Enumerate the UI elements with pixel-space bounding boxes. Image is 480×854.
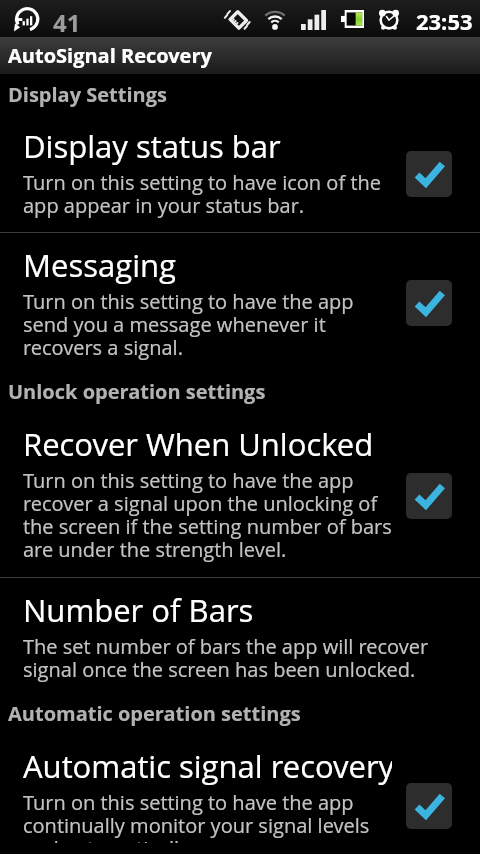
staticText: AutoSignal Recovery [8, 42, 212, 69]
staticText: Turn on this setting to have the app con… [23, 789, 392, 843]
staticText: Display Settings [8, 81, 480, 108]
button[interactable]: Toggle setting [406, 280, 452, 326]
staticText: Turn on this setting to have the app rec… [23, 467, 392, 563]
staticText: Display status bar [23, 125, 281, 167]
button[interactable]: Number of Bars [0, 578, 480, 688]
staticText: 23:53 [416, 6, 473, 36]
staticText: Turn on this setting to have the app sen… [23, 288, 392, 361]
button[interactable]: Display status bar [0, 125, 480, 232]
staticText: Number of Bars [23, 589, 254, 631]
staticText: 41 [53, 6, 81, 39]
staticText: Recover When Unlocked [23, 423, 374, 465]
staticText: The set number of bars the app will reco… [23, 633, 456, 683]
staticText: Messaging [23, 244, 177, 286]
staticText: Turn on this setting to have icon of the… [23, 169, 392, 219]
button[interactable]: Automatic signal recovery [0, 745, 480, 854]
button[interactable]: Toggle setting [406, 151, 452, 197]
button[interactable]: Messaging [0, 233, 480, 366]
button[interactable]: Recover When Unlocked [0, 423, 480, 577]
staticText: Automatic operation settings [8, 700, 480, 727]
staticText: Unlock operation settings [8, 378, 480, 405]
button[interactable]: Toggle setting [406, 473, 452, 519]
button[interactable]: Toggle setting [406, 783, 452, 829]
staticText: Automatic signal recovery [23, 745, 392, 787]
